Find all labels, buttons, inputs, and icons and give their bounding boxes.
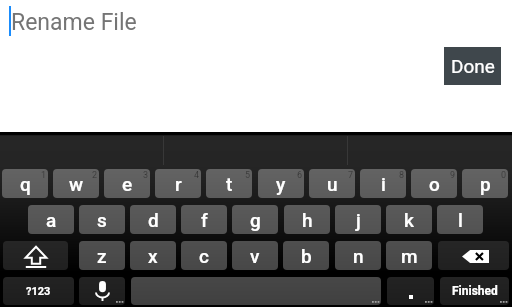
button[interactable]: g [232,205,278,234]
staticText: x [148,245,158,267]
staticText: a [46,209,57,231]
button[interactable]: m [386,241,432,270]
button[interactable]: k [386,205,432,234]
staticText: Done [451,55,495,77]
button[interactable]: Finished [440,277,509,305]
staticText: c [199,245,209,267]
staticText: m [401,245,418,267]
staticText: 7 [348,170,354,181]
button[interactable]: e [104,169,150,198]
button[interactable]: o [411,169,457,198]
staticText: b [301,245,312,267]
staticText: n [353,245,364,267]
staticText: r [175,173,182,195]
staticText: g [250,209,261,231]
staticText: o [429,173,440,195]
staticText: i [381,173,386,195]
button[interactable]: h [284,205,330,234]
button[interactable]: n [335,241,381,270]
button[interactable]: v [232,241,278,270]
staticText: 9 [450,170,456,181]
staticText: p [480,173,491,195]
button[interactable]: Delete [438,241,509,270]
staticText: t [226,173,233,195]
staticText: ?123 [26,285,51,298]
button[interactable]: Shift [3,241,68,270]
staticText: z [97,245,107,267]
staticText: 3 [143,170,149,181]
staticText: v [250,245,260,267]
button[interactable]: p [462,169,508,198]
button[interactable]: c [181,241,227,270]
staticText: 5 [245,170,251,181]
staticText: 8 [399,170,405,181]
staticText: h [302,209,313,231]
button[interactable]: s [79,205,125,234]
button[interactable]: u [309,169,355,198]
staticText: e [122,173,133,195]
staticText: 2 [92,170,98,181]
staticText: w [69,173,84,195]
button[interactable]: q [2,169,48,198]
button[interactable]: Space [131,277,381,305]
staticText: y [276,173,286,195]
button[interactable]: r [155,169,201,198]
button[interactable]: i [360,169,406,198]
staticText: l [458,209,463,231]
staticText: d [148,209,159,231]
staticText: s [97,209,107,231]
button[interactable]: Done [444,47,501,85]
button[interactable]: y [258,169,304,198]
button[interactable]: b [283,241,329,270]
button[interactable]: t [206,169,252,198]
button[interactable]: Voice input [79,277,125,305]
staticText: 0 [501,170,507,181]
staticText: j [356,209,361,231]
staticText: k [404,209,414,231]
button[interactable]: w [53,169,99,198]
button[interactable]: Period [387,277,434,305]
staticText: f [201,209,208,231]
staticText: Finished [452,284,498,298]
button[interactable]: x [130,241,176,270]
staticText: q [20,173,31,195]
button[interactable]: j [335,205,381,234]
button[interactable]: a [28,205,74,234]
button[interactable]: d [130,205,176,234]
staticText: 6 [297,170,303,181]
button[interactable]: f [181,205,227,234]
staticText: 1 [41,170,47,181]
button[interactable]: l [437,205,483,234]
staticText: Rename File [11,9,137,36]
button[interactable]: z [79,241,125,270]
button[interactable]: ?123 [3,277,74,305]
staticText: u [327,173,338,195]
staticText: 4 [194,170,200,181]
